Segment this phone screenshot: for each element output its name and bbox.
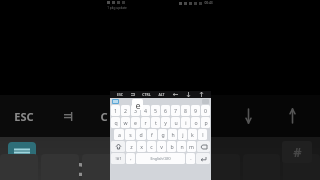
- staticText: x: [140, 143, 143, 150]
- button[interactable]: y: [161, 117, 170, 128]
- button[interactable]: r: [141, 117, 150, 128]
- staticText: a: [118, 131, 121, 138]
- staticText: CTRL: [142, 92, 151, 97]
- staticText: 00:43: [204, 1, 213, 5]
- button[interactable]: Down: [182, 91, 195, 98]
- staticText: ESC: [117, 92, 123, 97]
- button[interactable]: g: [158, 129, 167, 140]
- staticText: 5: [154, 107, 157, 114]
- button[interactable]: 0: [201, 105, 210, 116]
- button[interactable]: 8: [181, 105, 190, 116]
- staticText: ALT: [158, 92, 165, 97]
- staticText: 3: [134, 107, 137, 114]
- staticText: v: [160, 143, 163, 150]
- staticText: i: [185, 119, 187, 126]
- button[interactable]: i: [181, 117, 190, 128]
- button[interactable]: English (UK): [136, 153, 185, 164]
- staticText: s: [129, 131, 132, 138]
- button[interactable]: l: [198, 129, 207, 140]
- staticText: #: [293, 143, 302, 161]
- button[interactable]: Enter: [196, 153, 210, 164]
- button[interactable]: a: [114, 129, 124, 140]
- staticText: h: [171, 131, 175, 138]
- button[interactable]: Keyboard settings: [112, 99, 119, 104]
- button[interactable]: ESC: [113, 91, 127, 98]
- staticText: n: [180, 143, 184, 150]
- staticText: C: [100, 109, 108, 124]
- button[interactable]: ALT: [154, 91, 168, 98]
- button[interactable]: 3: [131, 105, 140, 116]
- staticText: r: [144, 119, 147, 126]
- staticText: l: [202, 131, 204, 138]
- button[interactable]: b: [167, 141, 176, 152]
- staticText: o: [194, 119, 198, 126]
- button[interactable]: j: [178, 129, 187, 140]
- staticText: 6: [164, 107, 167, 114]
- button[interactable]: 4: [141, 105, 150, 116]
- button[interactable]: s: [125, 129, 135, 140]
- button[interactable]: f: [147, 129, 157, 140]
- staticText: 4: [144, 107, 147, 114]
- button[interactable]: Up: [195, 91, 208, 98]
- button[interactable]: t: [151, 117, 160, 128]
- button[interactable]: Tab: [127, 91, 139, 98]
- button[interactable]: q: [111, 117, 120, 128]
- button[interactable]: ,: [126, 153, 135, 164]
- staticText: ,: [130, 155, 132, 162]
- button[interactable]: Backspace: [197, 141, 210, 152]
- button[interactable]: d: [136, 129, 146, 140]
- button[interactable]: k: [188, 129, 197, 140]
- button[interactable]: m: [187, 141, 196, 152]
- staticText: p: [204, 119, 208, 126]
- button[interactable]: z: [126, 141, 136, 152]
- staticText: g: [161, 131, 165, 138]
- button[interactable]: 6: [161, 105, 170, 116]
- staticText: e: [135, 99, 141, 110]
- staticText: u: [174, 119, 178, 126]
- staticText: q: [114, 119, 118, 126]
- staticText: k: [191, 131, 194, 138]
- staticText: 2: [124, 107, 127, 114]
- staticText: j: [182, 131, 184, 138]
- staticText: English (UK): [150, 156, 171, 161]
- button[interactable]: x: [137, 141, 146, 152]
- button[interactable]: 5: [151, 105, 160, 116]
- button[interactable]: h: [168, 129, 177, 140]
- staticText: 8: [184, 107, 187, 114]
- staticText: c: [150, 143, 153, 150]
- staticText: e: [66, 139, 92, 180]
- button[interactable]: CTRL: [139, 91, 154, 98]
- staticText: .: [190, 155, 192, 162]
- staticText: 1 pkg update: [107, 6, 127, 10]
- button[interactable]: Left: [168, 91, 182, 98]
- button[interactable]: 1: [111, 105, 120, 116]
- button[interactable]: 2: [121, 105, 130, 116]
- button[interactable]: !#1: [111, 153, 125, 164]
- staticText: 0: [204, 107, 207, 114]
- button[interactable]: c: [147, 141, 156, 152]
- button[interactable]: 9: [191, 105, 200, 116]
- staticText: 7: [174, 107, 177, 114]
- staticText: 1: [114, 107, 117, 114]
- button[interactable]: v: [157, 141, 166, 152]
- button[interactable]: p: [201, 117, 210, 128]
- staticText: y: [164, 119, 167, 126]
- staticText: z: [130, 143, 133, 150]
- staticText: e: [134, 119, 137, 126]
- button[interactable]: .: [186, 153, 195, 164]
- staticText: 9: [194, 107, 197, 114]
- button[interactable]: 7: [171, 105, 180, 116]
- button[interactable]: w: [121, 117, 130, 128]
- staticText: ESC: [14, 109, 34, 124]
- button[interactable]: Shift: [111, 141, 125, 152]
- button[interactable]: n: [177, 141, 186, 152]
- staticText: b: [170, 143, 174, 150]
- staticText: t: [155, 119, 157, 126]
- staticText: f: [151, 131, 153, 138]
- button[interactable]: u: [171, 117, 180, 128]
- button[interactable]: e: [131, 117, 140, 128]
- button[interactable]: o: [191, 117, 200, 128]
- staticText: !#1: [115, 156, 122, 162]
